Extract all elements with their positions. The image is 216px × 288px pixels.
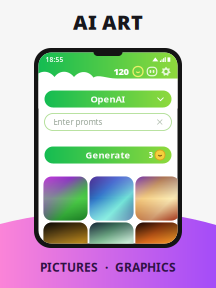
staticText: 18:55	[45, 55, 63, 64]
button[interactable]: Tokens	[132, 66, 143, 77]
button[interactable]: Artwork	[43, 222, 87, 266]
staticText: ·	[105, 259, 108, 275]
button[interactable]: OpenAI	[44, 90, 171, 107]
staticText: PICTURES	[40, 259, 98, 275]
button[interactable]: Settings	[160, 66, 171, 77]
button[interactable]: Artwork	[43, 176, 87, 220]
button[interactable]: Artwork	[89, 222, 133, 266]
button[interactable]: Artwork	[135, 176, 179, 220]
staticText: GRAPHICS	[115, 259, 176, 275]
staticText: Generate	[85, 149, 130, 161]
staticText: 3	[148, 150, 153, 160]
staticText: Enter promts	[53, 117, 102, 127]
staticText: OpenAI	[90, 93, 125, 105]
staticText: AI ART	[73, 9, 143, 35]
button[interactable]: Styles	[146, 66, 157, 77]
staticText: 120	[113, 65, 128, 78]
button[interactable]: Artwork	[135, 222, 179, 266]
button[interactable]: Generate	[44, 146, 171, 163]
button[interactable]: Enter promts	[44, 113, 171, 130]
button[interactable]: Artwork	[89, 176, 133, 220]
